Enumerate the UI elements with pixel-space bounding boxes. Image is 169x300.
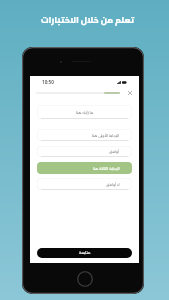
staticText: لا أوافق [106,181,120,188]
staticText: أوافق [109,148,120,155]
button[interactable]: Close [125,88,135,98]
button[interactable]: أوافق [37,146,132,157]
button[interactable]: الإجابة الثالثة هنا [37,162,132,174]
button[interactable]: ما رأيك هنا [37,105,132,119]
staticText: 10:50 [42,79,54,85]
staticText: الإجابة الأولى هنا [92,132,120,139]
staticText: الإجابة الثالثة هنا [93,165,120,172]
staticText: متابعة [79,249,91,257]
button[interactable]: Home [77,271,93,287]
staticText: ما رأيك هنا [76,109,94,116]
staticText: تعلم من خلال الاختبارات [6,12,169,28]
button[interactable]: متابعة [37,248,132,258]
button[interactable]: لا أوافق [37,178,132,190]
button[interactable]: الإجابة الأولى هنا [37,129,132,141]
